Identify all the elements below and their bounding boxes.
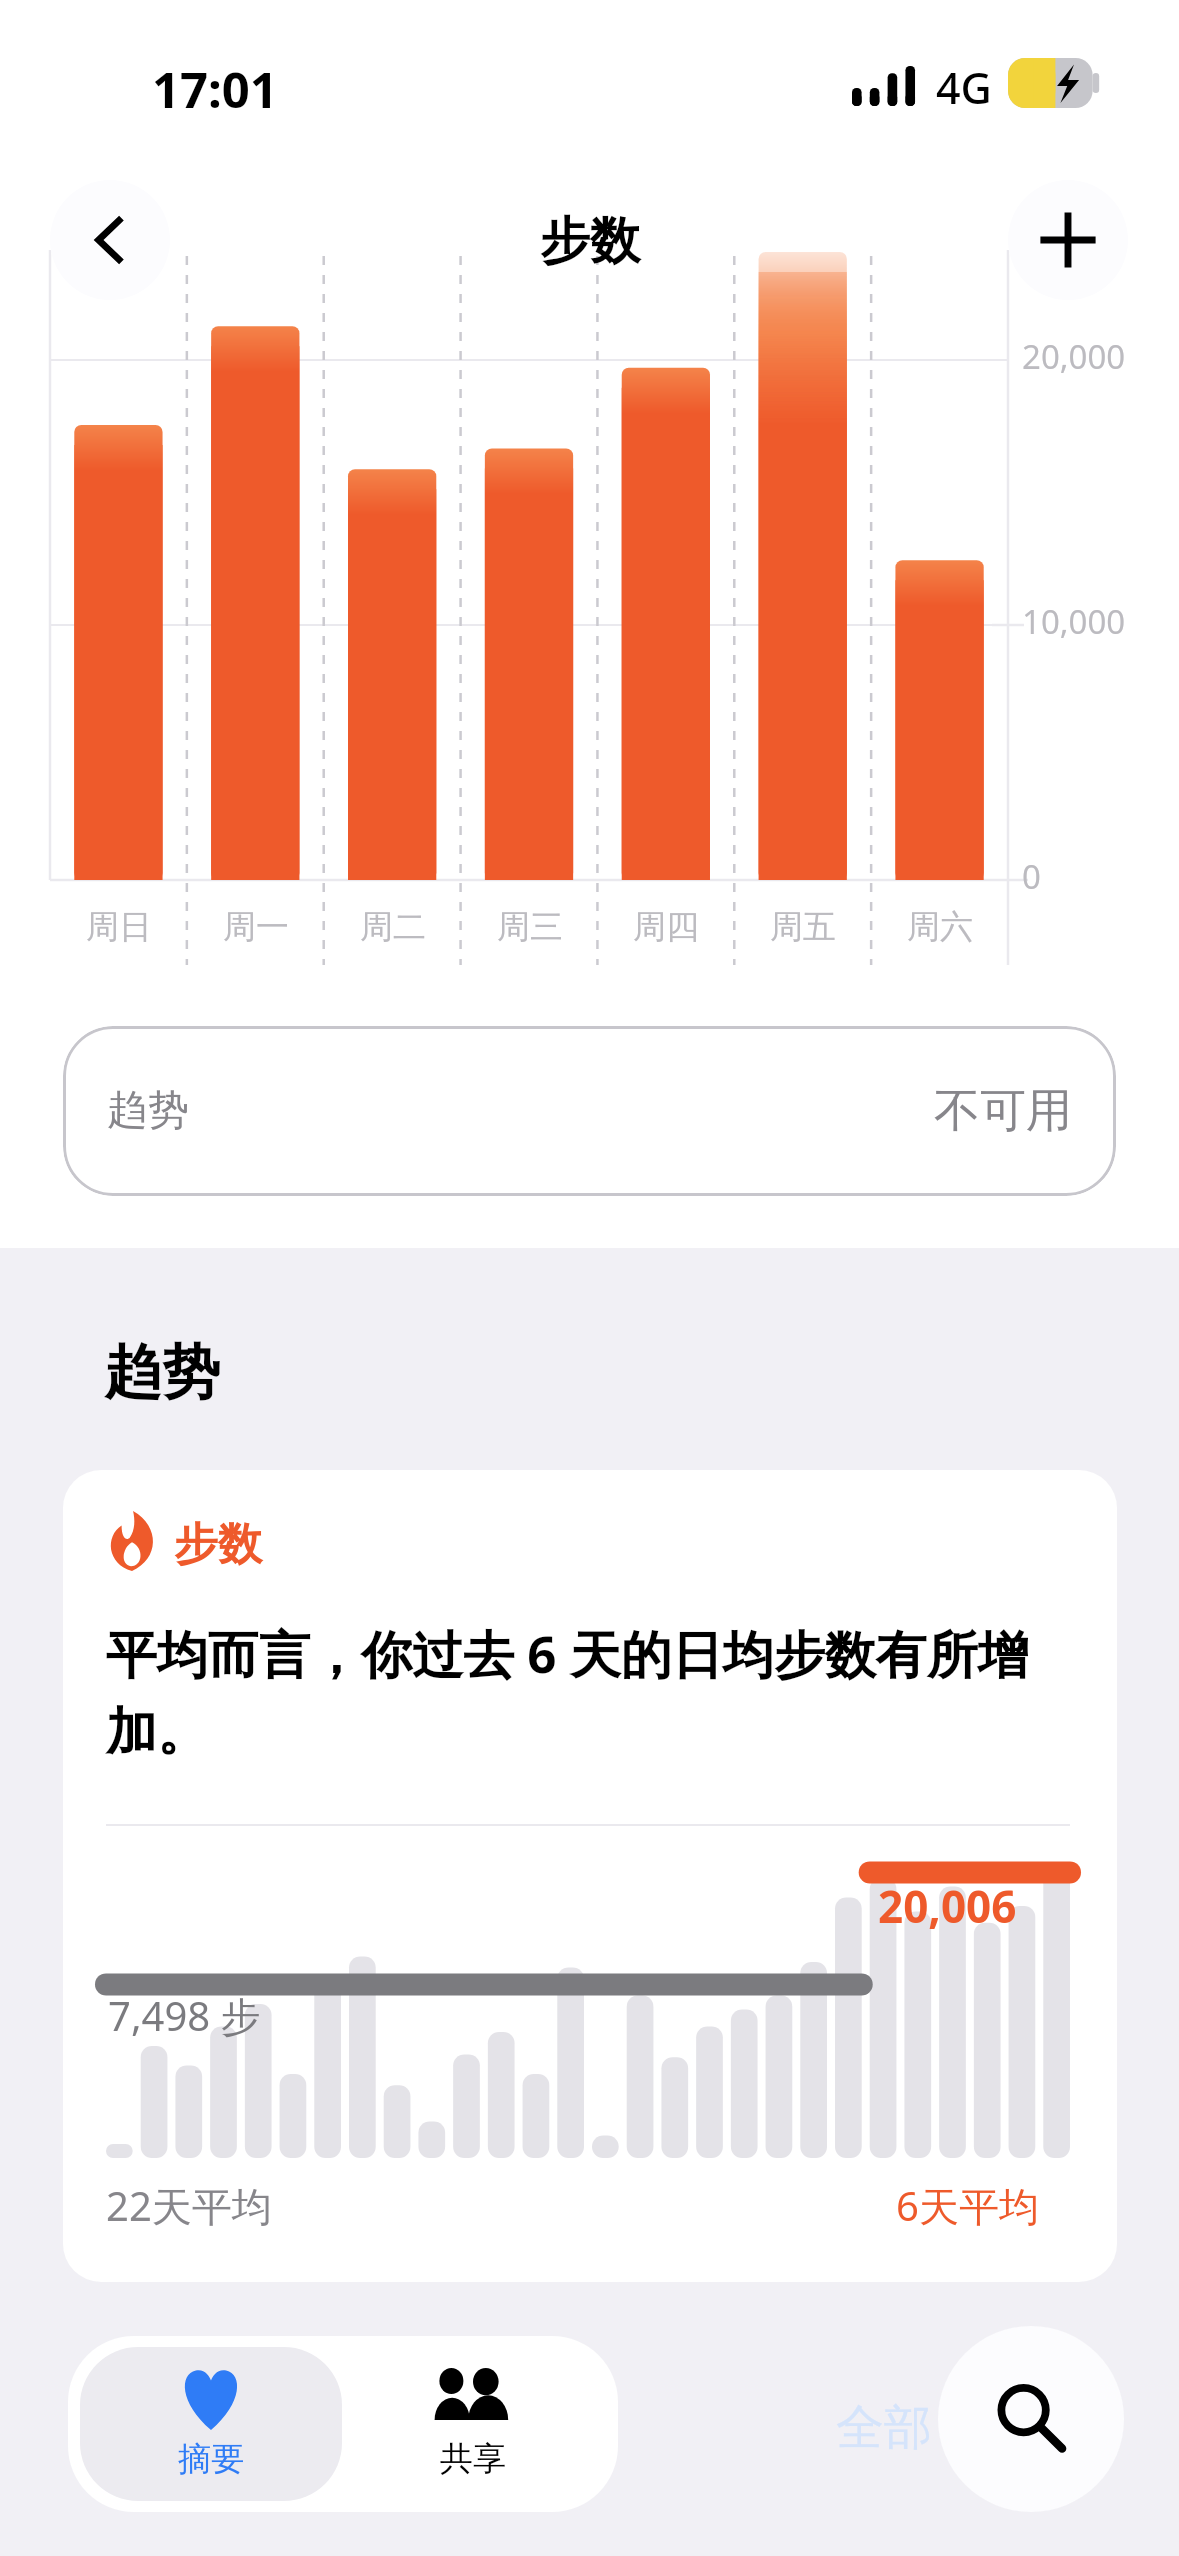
staticText: 6天平均 bbox=[896, 2178, 1039, 2233]
staticText: 全部 bbox=[836, 2398, 932, 2458]
staticText: 20,000 bbox=[1022, 334, 1126, 379]
staticText: 趋势 bbox=[107, 1085, 189, 1137]
staticText: 17:01 bbox=[152, 56, 278, 123]
staticText: 周三 bbox=[497, 906, 563, 948]
button[interactable]: 摘要 bbox=[80, 2347, 342, 2501]
staticText: 步数 bbox=[540, 210, 640, 273]
staticText: 20,006 bbox=[878, 1876, 1017, 1936]
staticText: 周四 bbox=[633, 906, 699, 948]
staticText: 平均而言，你过去 6 天的日均步数有所增加。 bbox=[106, 1618, 1072, 1764]
staticText: 22天平均 bbox=[106, 2178, 272, 2233]
staticText: 摘要 bbox=[178, 2438, 244, 2480]
staticText: 周五 bbox=[770, 906, 836, 948]
staticText: 7,498 步 bbox=[108, 1988, 261, 2043]
button[interactable]: 趋势 bbox=[63, 1026, 1116, 1196]
staticText: 步数 bbox=[174, 1517, 262, 1572]
button[interactable]: 共享 bbox=[342, 2347, 604, 2501]
button[interactable] bbox=[63, 1470, 1117, 2282]
staticText: 周二 bbox=[360, 906, 426, 948]
staticText: 不可用 bbox=[934, 1082, 1072, 1140]
staticText: 0 bbox=[1022, 854, 1041, 899]
staticText: 共享 bbox=[440, 2438, 506, 2480]
staticText: 周一 bbox=[223, 906, 289, 948]
button[interactable]: 搜索 bbox=[938, 2326, 1124, 2512]
staticText: 趋势 bbox=[104, 1336, 220, 1409]
staticText: 周日 bbox=[86, 906, 152, 948]
staticText: 4G bbox=[936, 58, 992, 117]
button[interactable]: 添加 bbox=[1008, 180, 1128, 300]
staticText: 周六 bbox=[907, 906, 973, 948]
staticText: 10,000 bbox=[1022, 599, 1126, 644]
button[interactable]: 返回 bbox=[50, 180, 170, 300]
